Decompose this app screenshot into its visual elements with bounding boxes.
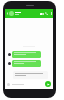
button[interactable]: Emoji bbox=[7, 83, 10, 86]
button[interactable]: Video call bbox=[39, 9, 44, 18]
button[interactable]: More options bbox=[49, 9, 53, 18]
button[interactable]: Call bbox=[44, 9, 49, 18]
button[interactable]: Back bbox=[5, 9, 9, 18]
button[interactable] bbox=[12, 60, 41, 67]
button[interactable] bbox=[13, 71, 48, 79]
button[interactable] bbox=[12, 51, 41, 58]
button[interactable]: Send bbox=[45, 81, 51, 87]
